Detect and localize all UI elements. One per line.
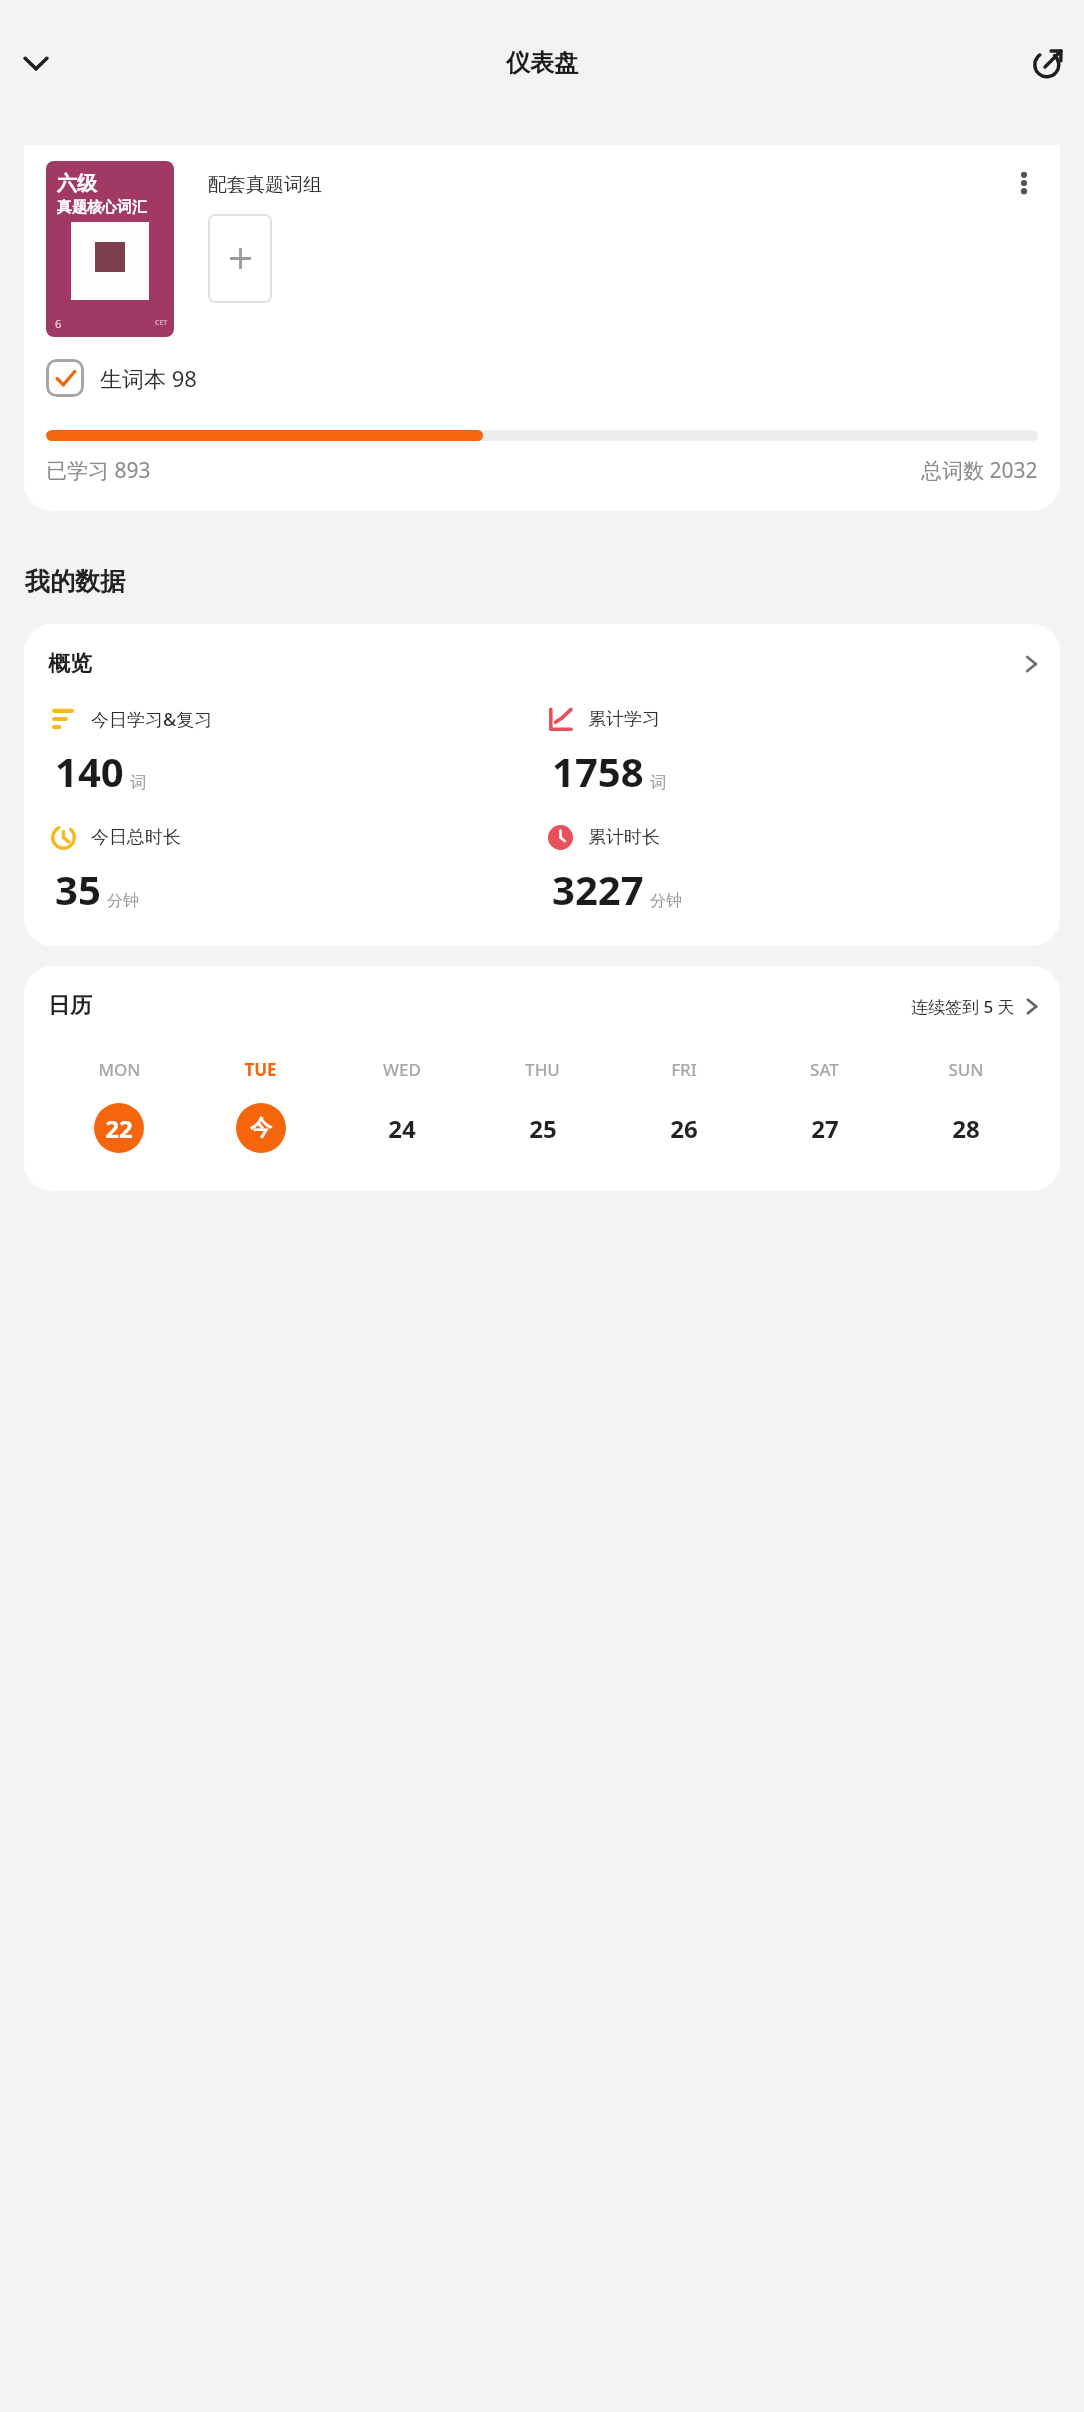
button[interactable]: 今 [236,1103,286,1153]
button[interactable]: Collapse [12,39,60,87]
staticText: 六级 [57,171,97,196]
staticText: 26 [670,1112,698,1145]
button[interactable]: More options [1002,161,1046,205]
staticText: WED [383,1058,421,1081]
button[interactable]: 25 [518,1103,568,1153]
staticText: TUE [244,1058,277,1081]
staticText: THU [525,1058,560,1081]
staticText: 仪表盘 [506,48,578,78]
button[interactable]: Add word list [208,214,272,303]
button[interactable]: 22 [94,1103,144,1153]
staticText: CET [155,318,168,328]
button[interactable]: 28 [941,1103,991,1153]
button[interactable]: 今日总时长 [48,822,545,916]
staticText: 词 [650,773,666,793]
staticText: 25 [529,1112,557,1145]
button[interactable]: 累计学习 [545,704,1042,798]
button[interactable]: 24 [377,1103,427,1153]
staticText: 累计时长 [588,826,660,849]
staticText: 累计学习 [588,708,660,731]
staticText: 22 [105,1112,133,1145]
button[interactable]: 27 [800,1103,850,1153]
button[interactable]: 累计时长 [545,822,1042,916]
staticText: 今 [250,1114,272,1142]
staticText: 分钟 [107,891,139,911]
staticText: 总词数 2032 [921,456,1038,485]
staticText: 生词本 98 [100,363,197,393]
staticText: 35 [55,862,101,916]
staticText: 28 [952,1112,980,1145]
button[interactable]: 生词本 98 [46,359,197,397]
staticText: 连续签到 5 天 [911,995,1015,1018]
staticText: SAT [810,1058,839,1081]
button[interactable]: 概览 [48,650,1042,678]
staticText: MON [98,1058,141,1081]
staticText: 1758 [552,744,644,798]
staticText: 27 [811,1112,839,1145]
staticText: 分钟 [650,891,682,911]
staticText: 140 [55,744,124,798]
staticText: 6 [55,316,62,331]
staticText: 日历 [48,992,92,1020]
staticText: 配套真题词组 [208,173,322,197]
staticText: 概览 [48,650,92,678]
button[interactable]: Share [1024,39,1072,87]
staticText: SUN [948,1058,984,1081]
staticText: 已学习 893 [46,456,151,485]
button[interactable]: 今日学习&复习 [48,704,545,798]
staticText: 今日总时长 [91,826,181,849]
staticText: 我的数据 [25,566,125,597]
button[interactable]: 六级 [46,161,174,337]
staticText: 真题核心词汇 [57,198,147,217]
staticText: 24 [388,1112,416,1145]
staticText: 词 [130,773,146,793]
staticText: FRI [671,1058,697,1081]
button[interactable]: 26 [659,1103,709,1153]
staticText: 今日学习&复习 [91,707,213,732]
button[interactable]: 连续签到 5 天 [911,995,1042,1018]
staticText: 3227 [552,862,644,916]
